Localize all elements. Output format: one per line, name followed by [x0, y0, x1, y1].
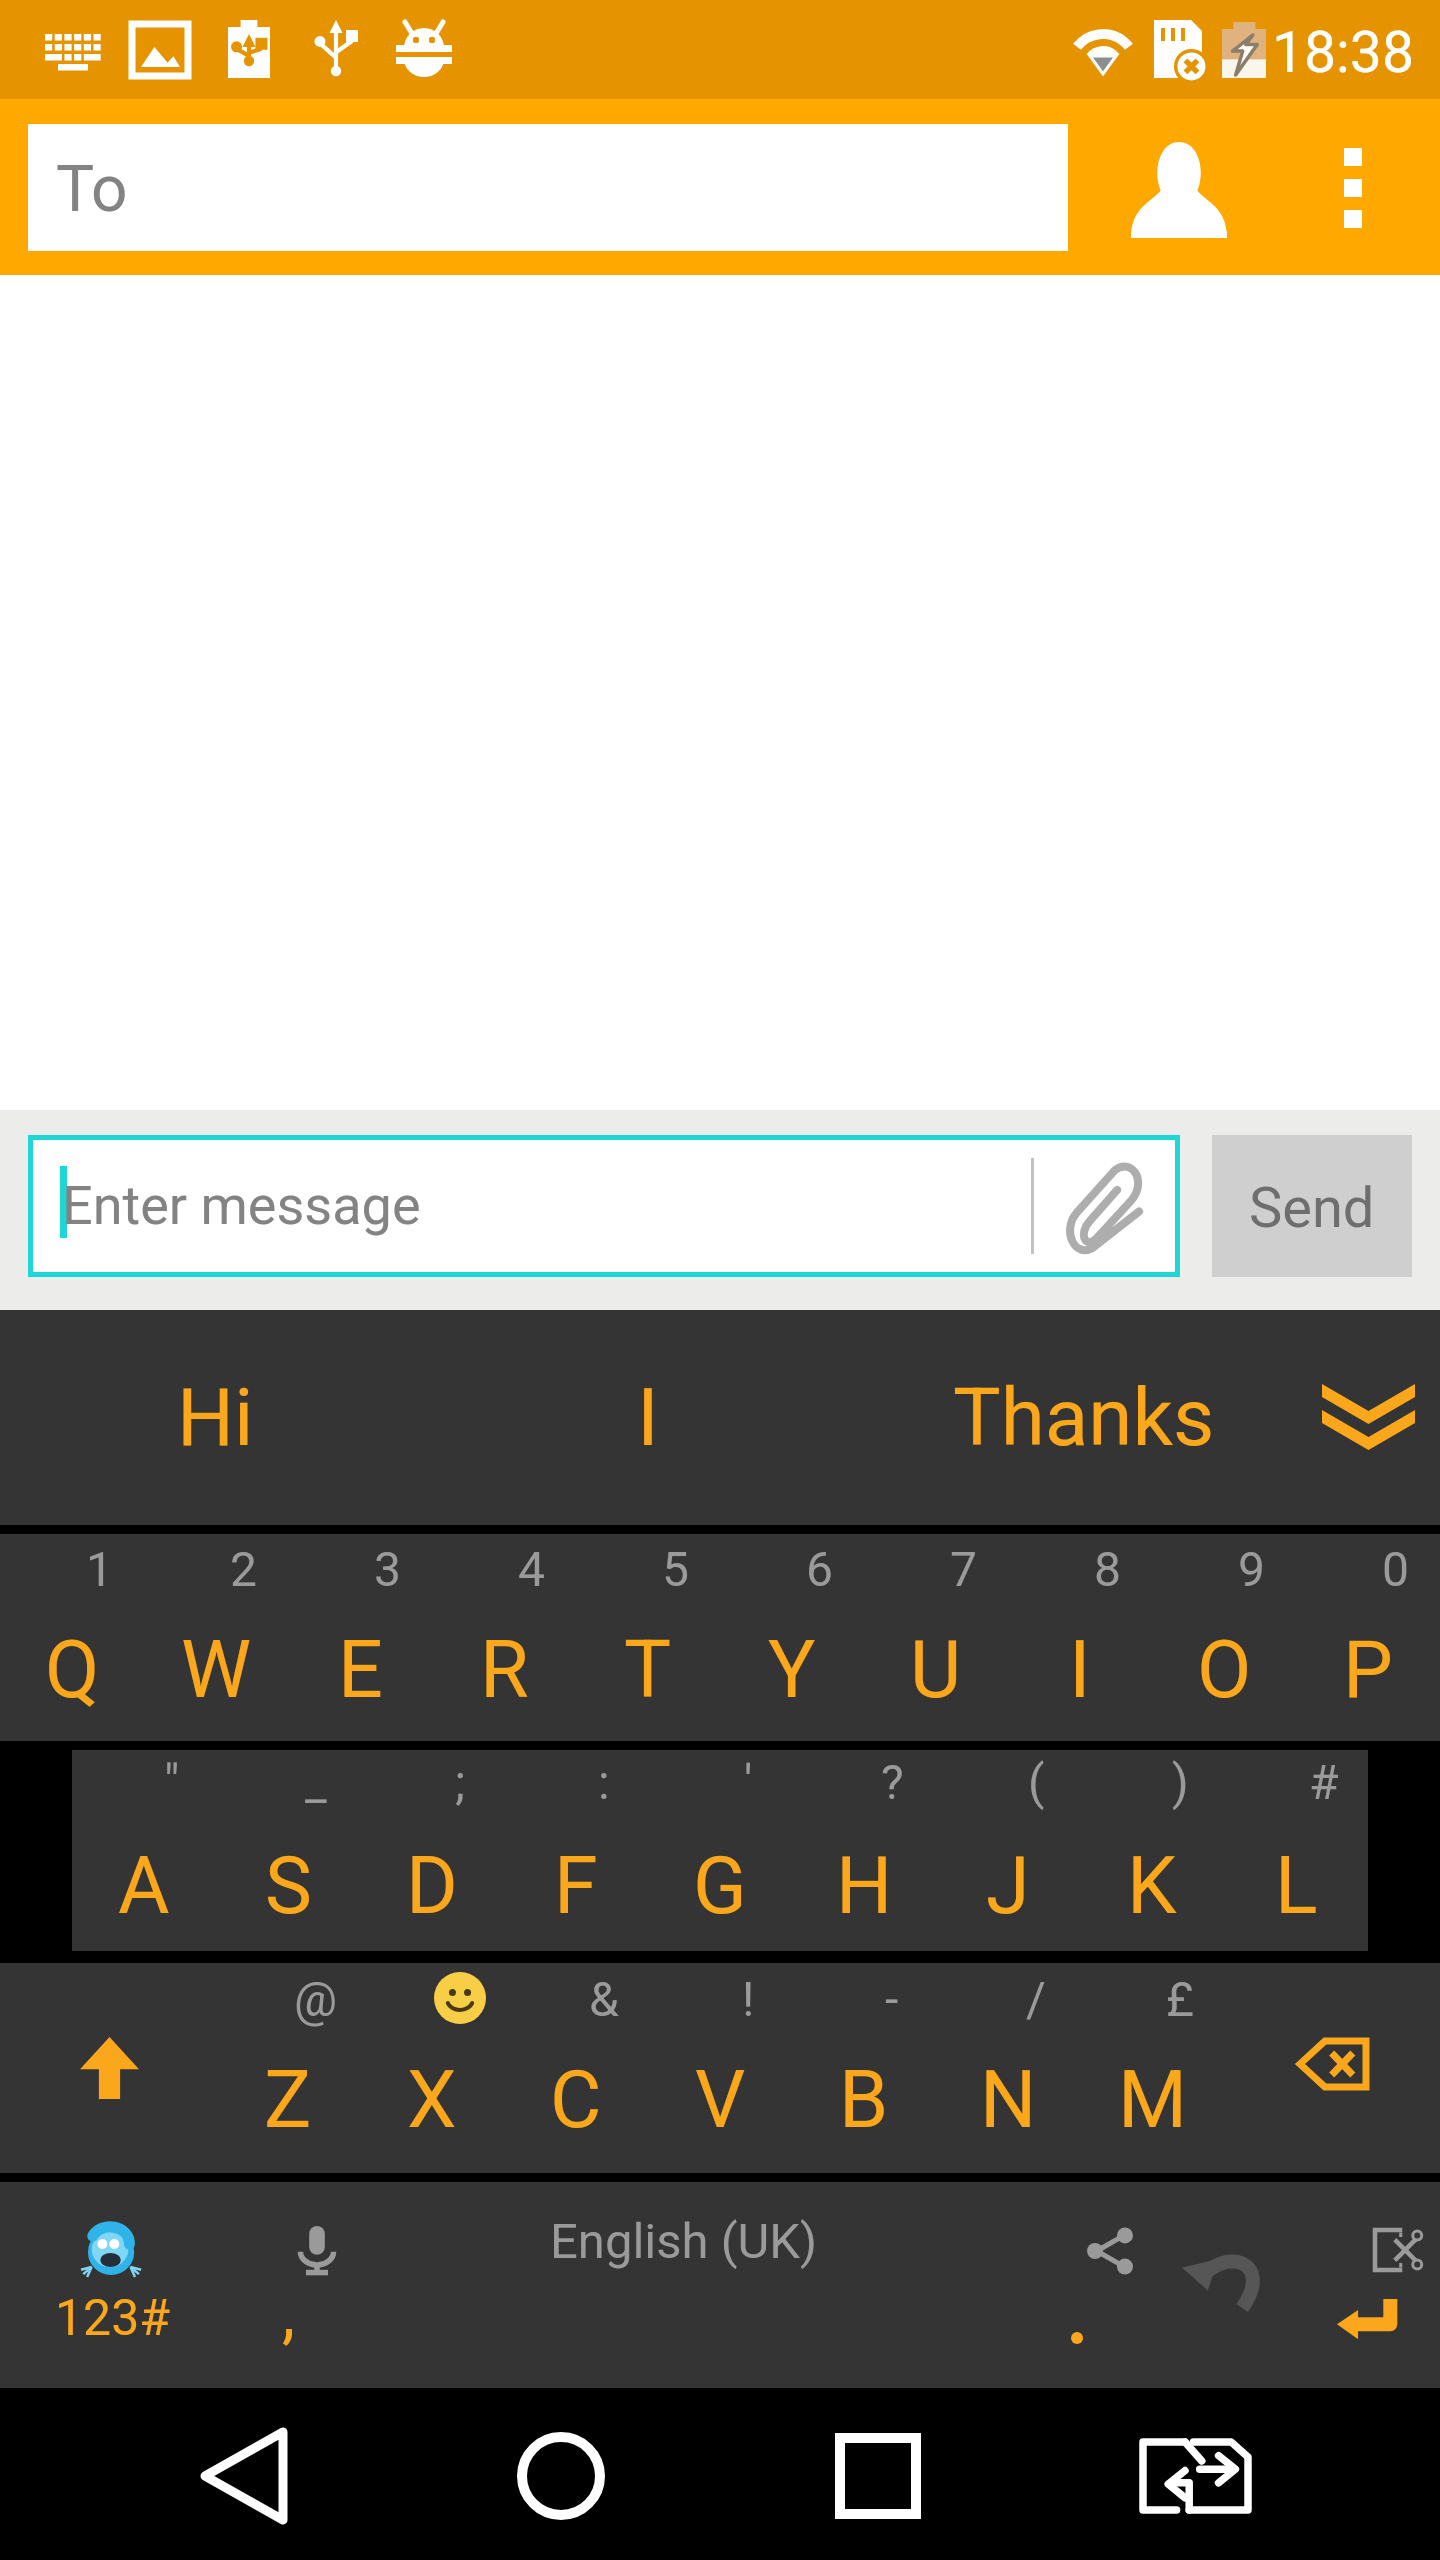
staticText: English (UK)	[550, 2213, 818, 2270]
staticText: '	[744, 1754, 753, 1810]
button[interactable]: :	[504, 1750, 648, 1951]
staticText: )	[1172, 1754, 1189, 1810]
staticText: 9	[1238, 1541, 1265, 1597]
staticText: ,	[282, 2275, 295, 2352]
staticText: B	[839, 2054, 889, 2147]
staticText: &	[589, 1971, 619, 2027]
staticText: /	[1026, 1971, 1046, 2027]
staticText: :	[598, 1754, 610, 1810]
staticText: S	[265, 1840, 312, 1933]
button[interactable]: 4	[432, 1534, 576, 1741]
button[interactable]: 9	[1152, 1534, 1296, 1741]
button[interactable]: More options	[1290, 99, 1440, 275]
staticText: L	[1275, 1840, 1318, 1933]
staticText: #	[1309, 1754, 1339, 1810]
button[interactable]: -	[792, 1963, 936, 2173]
button[interactable]: Contacts	[1068, 99, 1290, 275]
button[interactable]: ;	[360, 1750, 504, 1951]
button[interactable]: 2	[144, 1534, 288, 1741]
button[interactable]: Recents	[720, 2388, 1036, 2560]
button[interactable]: £	[1080, 1963, 1224, 2173]
button[interactable]: /	[936, 1963, 1080, 2173]
button[interactable]: 1	[0, 1534, 144, 1741]
staticText: Enter message	[62, 1174, 421, 1237]
staticText: F	[554, 1840, 598, 1933]
staticText: P	[1343, 1624, 1393, 1717]
button[interactable]: Enter message	[28, 1135, 1180, 1277]
button[interactable]: I	[431, 1310, 862, 1525]
button[interactable]: X	[360, 1963, 504, 2173]
button[interactable]: !	[648, 1963, 792, 2173]
button[interactable]: Back	[86, 2388, 402, 2560]
button[interactable]: English (UK)	[440, 2182, 1010, 2388]
staticText: "	[164, 1754, 180, 1810]
staticText: ?	[881, 1754, 904, 1810]
staticText: G	[693, 1840, 747, 1933]
staticText: T	[624, 1624, 672, 1717]
staticText: I	[1069, 1624, 1091, 1717]
button[interactable]: &	[504, 1963, 648, 2173]
staticText: 8	[1094, 1541, 1121, 1597]
button[interactable]: Home	[403, 2388, 719, 2560]
button[interactable]: Switch app	[1037, 2388, 1353, 2560]
staticText: (	[1028, 1754, 1045, 1810]
staticText: 7	[950, 1541, 977, 1597]
staticText: I	[637, 1371, 659, 1465]
staticText: 2	[230, 1541, 257, 1597]
button[interactable]: Enter	[1290, 2182, 1440, 2388]
staticText: £	[1166, 1971, 1194, 2027]
button[interactable]: Expand suggestions	[1293, 1310, 1440, 1525]
staticText: X	[407, 2054, 457, 2147]
staticText: Y	[768, 1624, 816, 1717]
staticText: D	[406, 1840, 458, 1933]
button[interactable]: Share	[1010, 2182, 1170, 2388]
button[interactable]: '	[648, 1750, 792, 1951]
button[interactable]: Backspace	[1224, 1963, 1440, 2173]
staticText: 1	[86, 1541, 113, 1597]
staticText: 6	[806, 1541, 833, 1597]
staticText: E	[338, 1624, 383, 1717]
staticText: 0	[1382, 1541, 1409, 1597]
button[interactable]: 3	[288, 1534, 432, 1741]
button[interactable]: Attach	[1034, 1135, 1180, 1277]
staticText: 4	[518, 1541, 545, 1597]
button[interactable]: #	[1224, 1750, 1368, 1951]
button[interactable]: To	[28, 124, 1068, 251]
staticText: @	[294, 1971, 338, 2027]
staticText: Q	[45, 1624, 100, 1717]
staticText: Hi	[177, 1371, 254, 1465]
staticText: J	[986, 1840, 1030, 1933]
staticText: ;	[455, 1754, 466, 1810]
button[interactable]: @	[216, 1963, 360, 2173]
staticText: Send	[1249, 1175, 1375, 1241]
button[interactable]: Voice input	[220, 2182, 440, 2388]
staticText: N	[980, 2054, 1037, 2147]
staticText: 3	[374, 1541, 401, 1597]
staticText: R	[480, 1624, 529, 1717]
button[interactable]: 6	[720, 1534, 864, 1741]
staticText: H	[836, 1840, 893, 1933]
button[interactable]: 7	[864, 1534, 1008, 1741]
staticText: M	[1118, 2054, 1187, 2147]
button[interactable]: Shift	[0, 1963, 216, 2173]
button[interactable]: 5	[576, 1534, 720, 1741]
staticText: !	[742, 1971, 755, 2027]
button[interactable]: Undo	[1170, 2182, 1290, 2388]
button[interactable]: "	[72, 1750, 216, 1951]
button[interactable]: )	[1080, 1750, 1224, 1951]
staticText: V	[695, 2054, 746, 2147]
button[interactable]: Send	[1212, 1135, 1412, 1277]
button[interactable]: 0	[1296, 1534, 1440, 1741]
staticText: Z	[264, 2054, 312, 2147]
button[interactable]: 123#	[0, 2182, 220, 2388]
button[interactable]: 8	[1008, 1534, 1152, 1741]
staticText: K	[1127, 1840, 1177, 1933]
button[interactable]: (	[936, 1750, 1080, 1951]
button[interactable]: _	[216, 1750, 360, 1951]
staticText: A	[118, 1840, 170, 1933]
staticText: C	[550, 2054, 602, 2147]
button[interactable]: Thanks	[862, 1310, 1293, 1525]
button[interactable]: Hi	[0, 1310, 431, 1525]
button[interactable]: ?	[792, 1750, 936, 1951]
staticText: _	[305, 1754, 327, 1810]
